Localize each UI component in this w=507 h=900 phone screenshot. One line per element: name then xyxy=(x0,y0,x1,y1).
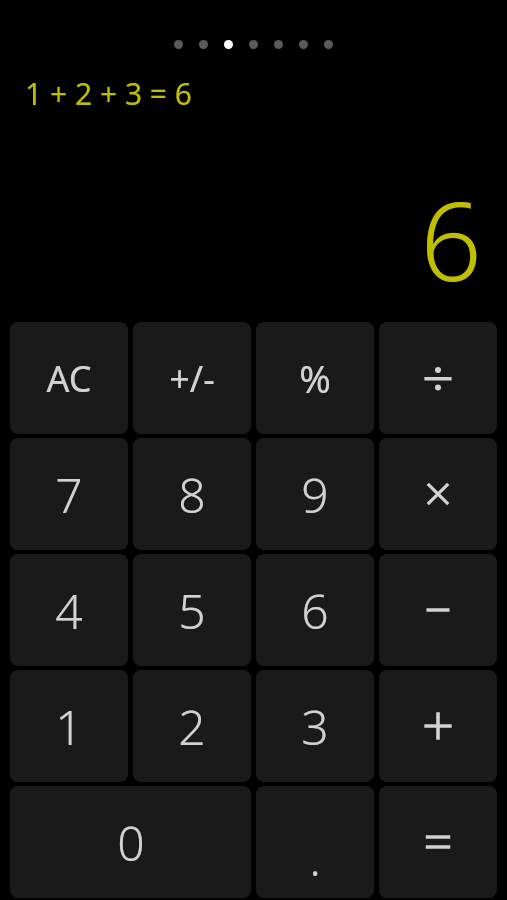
button[interactable]: 7 xyxy=(10,438,128,550)
button[interactable]: 2 xyxy=(133,670,251,782)
button[interactable]: 5 xyxy=(133,554,251,666)
button[interactable]: 3 xyxy=(256,670,374,782)
staticText: % xyxy=(299,352,331,404)
button[interactable]: Minus xyxy=(379,554,497,666)
staticText: 6 xyxy=(420,166,482,313)
button[interactable]: AC xyxy=(10,322,128,434)
button[interactable]: Plus xyxy=(379,670,497,782)
button[interactable]: 1 xyxy=(10,670,128,782)
staticText: 0 xyxy=(117,810,145,875)
staticText: 1 xyxy=(55,694,83,759)
staticText: . xyxy=(309,825,321,890)
staticText: 6 xyxy=(301,578,329,643)
staticText: AC xyxy=(46,354,92,403)
staticText: +/- xyxy=(169,354,215,403)
button[interactable]: . xyxy=(256,786,374,898)
staticText: 3 xyxy=(301,694,329,759)
button[interactable]: 8 xyxy=(133,438,251,550)
button[interactable]: % xyxy=(256,322,374,434)
staticText: 4 xyxy=(55,578,83,643)
button[interactable]: 0 xyxy=(10,786,251,898)
staticText: 5 xyxy=(178,578,206,643)
staticText: 7 xyxy=(55,462,83,527)
button[interactable]: 9 xyxy=(256,438,374,550)
staticText: 2 xyxy=(178,694,206,759)
button[interactable]: 6 xyxy=(256,554,374,666)
button[interactable]: 4 xyxy=(10,554,128,666)
staticText: 1 + 2 + 3 = 6 xyxy=(25,73,192,114)
button[interactable]: +/- xyxy=(133,322,251,434)
staticText: 8 xyxy=(178,462,206,527)
button[interactable]: Equals xyxy=(379,786,497,898)
button[interactable]: Divide xyxy=(379,322,497,434)
staticText: 9 xyxy=(301,462,329,527)
button[interactable]: Multiply xyxy=(379,438,497,550)
